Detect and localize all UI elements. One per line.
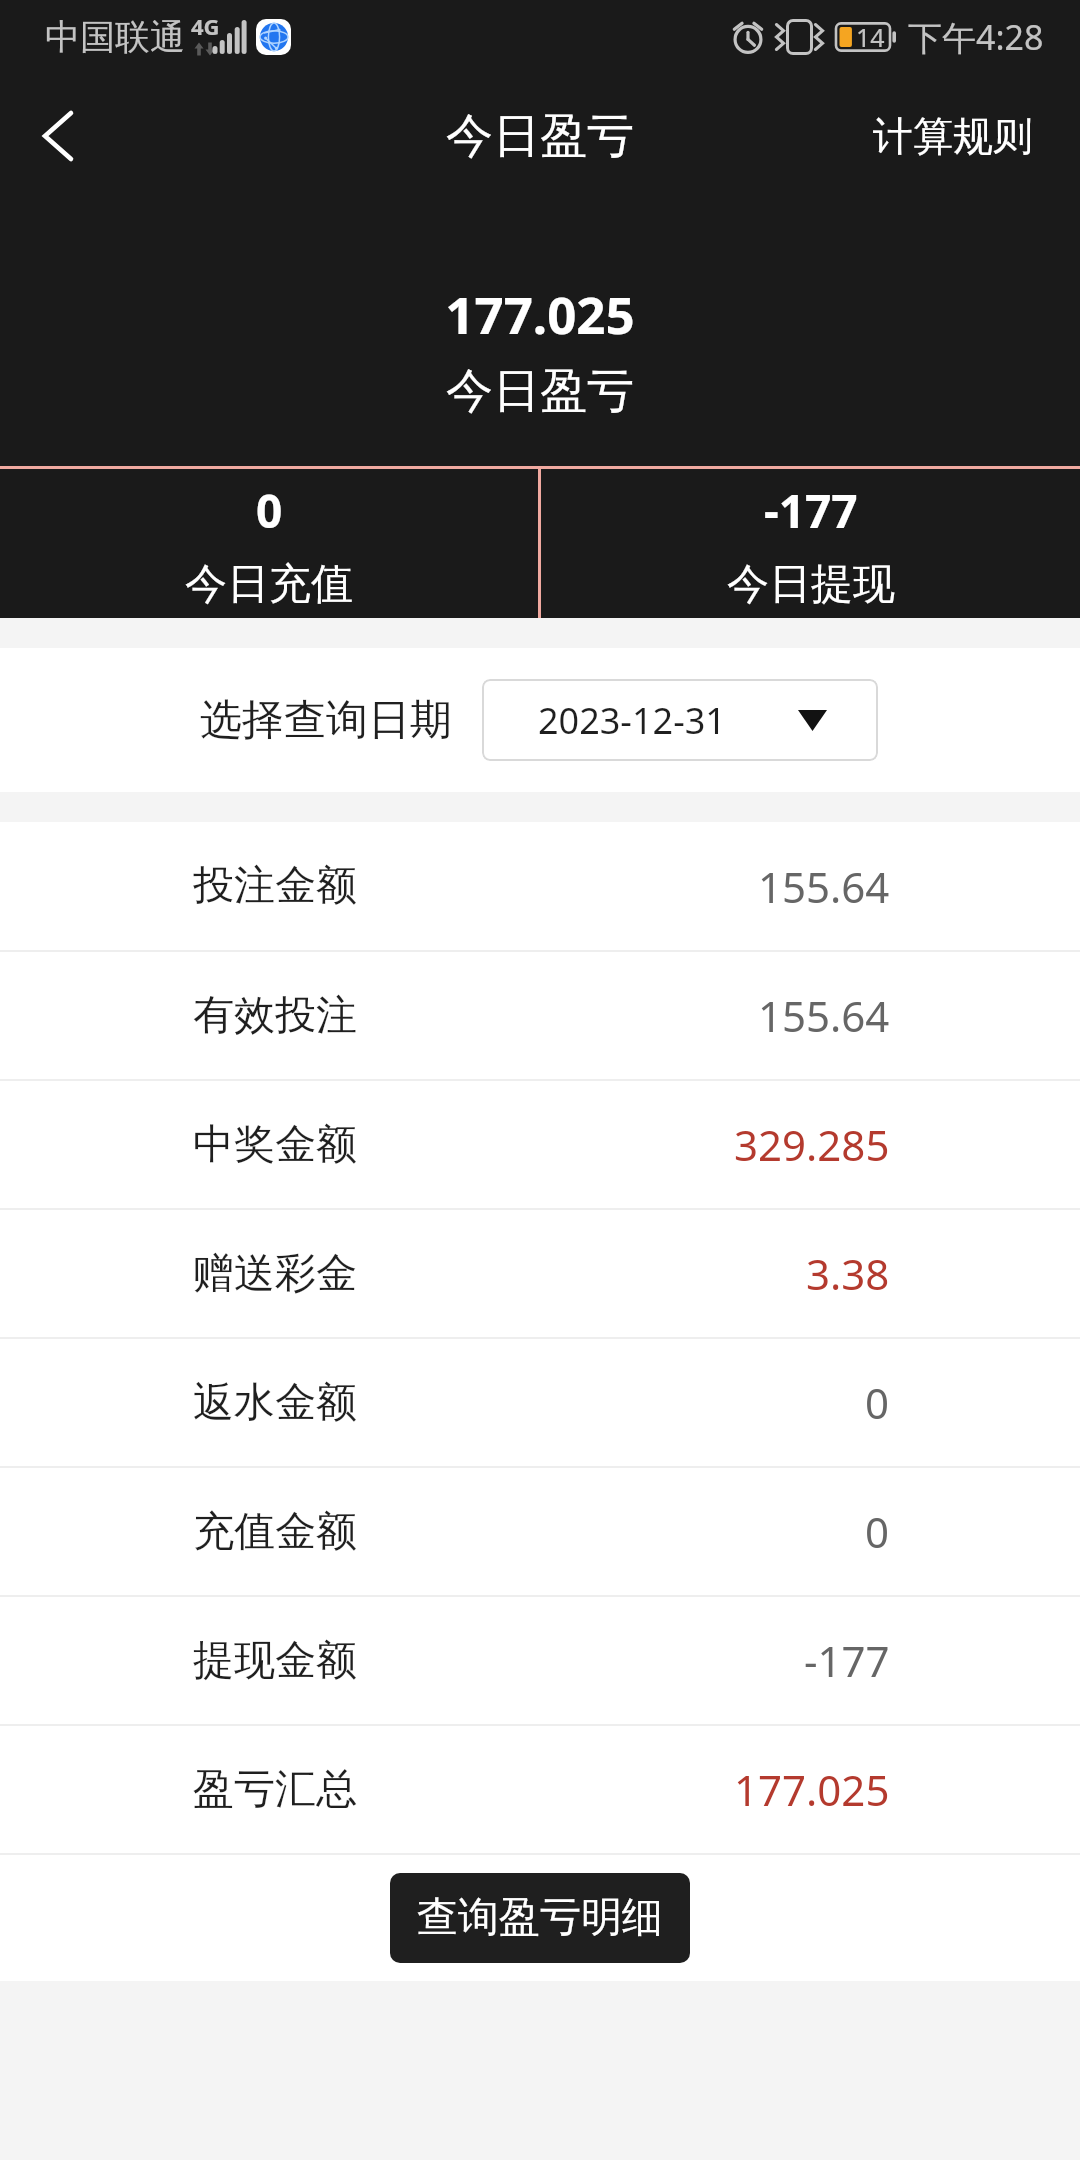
button[interactable]: 投注金额 [0,822,1080,950]
button[interactable]: 2023-12-31 [482,679,878,761]
staticText: 155.64 [758,858,890,915]
staticText: 0 [865,1374,890,1431]
staticText: 今日盈亏 [0,362,1080,421]
staticText: 中国联通 [45,15,185,59]
staticText: 充值金额 [193,1506,357,1558]
button[interactable]: 查询盈亏明细 [390,1873,690,1963]
staticText: 今日盈亏 [446,107,634,166]
staticText: 177.025 [734,1761,890,1818]
staticText: 下午4:28 [908,14,1044,60]
staticText: 计算规则 [873,111,1033,161]
staticText: 4G [191,11,220,41]
staticText: 2023-12-31 [538,696,726,745]
staticText: 返水金额 [193,1377,357,1429]
button[interactable]: 中奖金额 [0,1081,1080,1208]
button[interactable]: 盈亏汇总 [0,1726,1080,1853]
staticText: 赠送彩金 [193,1248,357,1300]
button[interactable]: 提现金额 [0,1597,1080,1724]
staticText: 今日提现 [727,558,895,611]
button[interactable]: 返水金额 [0,1339,1080,1466]
staticText: 177.025 [0,279,1080,348]
staticText: 有效投注 [193,990,357,1042]
staticText: 155.64 [758,987,890,1044]
staticText: 今日充值 [185,558,353,611]
staticText: 投注金额 [193,860,357,912]
staticText: 查询盈亏明细 [417,1892,663,1944]
staticText: 0 [256,479,283,542]
button[interactable]: 返回 [0,90,118,182]
staticText: 中奖金额 [193,1119,357,1171]
staticText: -177 [804,1632,890,1689]
button[interactable]: 0 [0,469,538,618]
staticText: 329.285 [734,1116,890,1173]
staticText: 提现金额 [193,1635,357,1687]
staticText: -177 [764,479,858,542]
button[interactable]: -177 [541,469,1080,618]
button[interactable]: 计算规则 [849,90,1080,182]
staticText: 14 [856,20,885,54]
button[interactable]: 有效投注 [0,952,1080,1079]
staticText: 选择查询日期 [200,694,452,747]
button[interactable]: 充值金额 [0,1468,1080,1595]
button[interactable]: 赠送彩金 [0,1210,1080,1337]
staticText: 3.38 [806,1245,890,1302]
staticText: 盈亏汇总 [193,1764,357,1816]
staticText: 0 [865,1503,890,1560]
